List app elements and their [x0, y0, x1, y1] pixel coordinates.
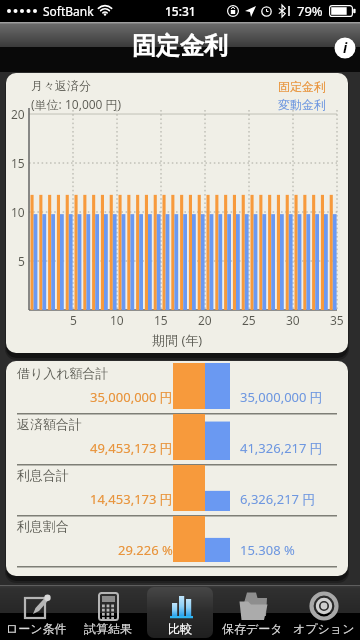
staticText: 79% — [297, 2, 323, 20]
staticText: 35 — [330, 312, 344, 328]
staticText: 25 — [242, 312, 256, 328]
staticText: 20 — [11, 106, 25, 122]
button[interactable]: ローン条件 — [3, 587, 69, 638]
staticText: 35,000,000 円 — [90, 388, 173, 406]
staticText: 29.226 % — [118, 541, 173, 559]
staticText: 月々返済分 — [31, 78, 91, 93]
staticText: 10 — [110, 312, 124, 328]
staticText: 15:31 — [165, 3, 196, 19]
staticText: 20 — [198, 312, 212, 328]
staticText: 返済額合計 — [17, 416, 82, 432]
staticText: 固定金利 — [278, 79, 326, 94]
staticText: 10 — [11, 204, 25, 220]
staticText: SoftBank — [43, 3, 94, 19]
staticText: 35,000,000 円 — [240, 388, 323, 406]
staticText: 15 — [11, 155, 25, 171]
staticText: 14,453,173 円 — [90, 490, 173, 508]
staticText: (単位: 10,000 円) — [31, 96, 122, 112]
button[interactable]: 試算結果 — [75, 587, 141, 638]
staticText: オプション — [293, 621, 355, 636]
button[interactable]: 利息割合 — [6, 516, 348, 567]
button[interactable]: 利息合計 — [6, 465, 348, 516]
staticText: 試算結果 — [84, 621, 132, 636]
button[interactable]: オプション — [291, 587, 357, 638]
staticText: 比較 — [168, 621, 192, 636]
staticText: 49,453,173 円 — [90, 439, 173, 457]
staticText: 期間 (年) — [152, 331, 203, 349]
staticText: 変動金利 — [278, 97, 326, 112]
staticText: 5 — [18, 253, 25, 269]
button[interactable]: 借り入れ額合計 — [6, 363, 348, 414]
staticText: 15.308 % — [240, 541, 295, 559]
staticText: 30 — [286, 312, 300, 328]
staticText: i — [343, 38, 348, 57]
button[interactable]: 返済額合計 — [6, 414, 348, 465]
staticText: 保存データ — [222, 621, 283, 636]
staticText: ローン条件 — [6, 621, 67, 636]
staticText: 利息割合 — [17, 518, 69, 534]
staticText: 5 — [70, 312, 77, 328]
staticText: 6,326,217 円 — [240, 490, 316, 508]
button[interactable]: 比較 — [147, 587, 213, 638]
staticText: 借り入れ額合計 — [17, 365, 109, 381]
button[interactable]: 保存データ — [219, 587, 285, 638]
staticText: 固定金利 — [132, 31, 228, 61]
staticText: 41,326,217 円 — [240, 439, 323, 457]
staticText: 利息合計 — [17, 467, 69, 483]
button[interactable]: 情報 — [334, 37, 356, 59]
staticText: 15 — [154, 312, 168, 328]
